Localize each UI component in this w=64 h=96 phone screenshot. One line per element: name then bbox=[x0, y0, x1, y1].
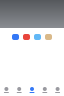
button[interactable]: Tab bbox=[26, 87, 38, 93]
button[interactable]: Tab bbox=[13, 87, 26, 93]
button[interactable]: Tab bbox=[0, 87, 13, 93]
button[interactable]: Tab bbox=[38, 87, 51, 93]
button[interactable]: Tab bbox=[51, 87, 64, 93]
